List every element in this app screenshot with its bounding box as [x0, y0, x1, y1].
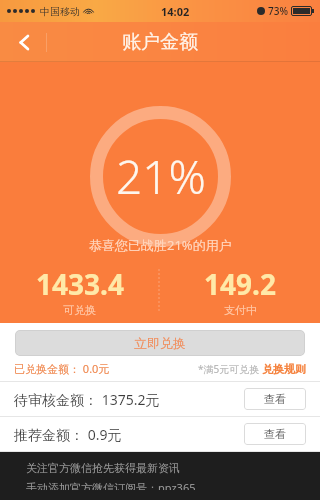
staticText: 已兑换金额： 0.0元 — [14, 361, 110, 376]
staticText: 手动添加官方微信订阅号：ppz365 — [26, 480, 196, 490]
staticText: 兑换规则 — [262, 362, 306, 376]
staticText: 查看 — [264, 392, 286, 406]
staticText: 查看 — [264, 427, 286, 441]
button[interactable]: 查看 — [244, 388, 306, 410]
staticText: 待审核金额： 1375.2元 — [14, 390, 160, 409]
staticText: 账户金额 — [122, 30, 198, 54]
staticText: *满5元可兑换 — [198, 362, 260, 376]
staticText: 149.2 — [204, 265, 276, 303]
staticText: 推荐金额： 0.9元 — [14, 425, 122, 444]
staticText: 中国移动 — [40, 5, 80, 18]
staticText: 73% — [268, 4, 288, 18]
staticText: 恭喜您已战胜21%的用户 — [89, 236, 232, 254]
button[interactable]: 兑换规则 — [262, 362, 306, 376]
staticText: 关注官方微信抢先获得最新资讯 — [26, 461, 180, 475]
staticText: 14:02 — [161, 4, 190, 19]
staticText: 立即兑换 — [134, 335, 186, 351]
staticText: 1433.4 — [36, 265, 124, 303]
staticText: 可兑换 — [63, 303, 96, 317]
staticText: 支付中 — [224, 303, 257, 317]
staticText: 21% — [116, 145, 206, 208]
button[interactable]: 查看 — [244, 423, 306, 445]
button[interactable]: 立即兑换 — [15, 330, 305, 356]
button[interactable]: Back — [0, 22, 48, 62]
